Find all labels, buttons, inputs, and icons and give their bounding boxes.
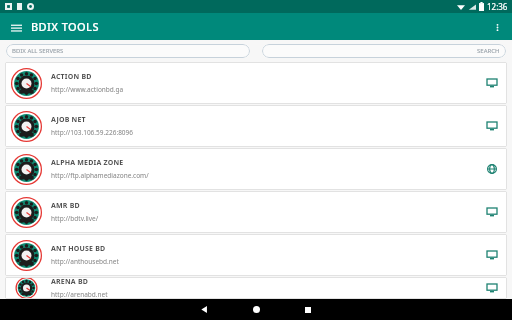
button[interactable]: ALPHA MEDIA ZONE (5, 148, 507, 190)
button[interactable]: Open navigation menu (5, 16, 27, 38)
button[interactable]: Open in browser (483, 246, 501, 264)
button[interactable]: ANT HOUSE BD (5, 234, 507, 276)
staticText: ANT HOUSE BD (51, 244, 106, 254)
button[interactable]: More options (486, 16, 508, 38)
staticText: 12:36 (487, 1, 508, 12)
staticText: BDIX ALL SERVERS (12, 47, 64, 55)
staticText: http://www.actionbd.ga (51, 85, 124, 94)
button[interactable]: SEARCH (262, 44, 506, 58)
staticText: http://anthousebd.net (51, 257, 119, 266)
staticText: SEARCH (477, 47, 500, 55)
staticText: BDIX TOOLS (31, 19, 99, 34)
staticText: http://ftp.alphamediazone.com/ (51, 171, 149, 180)
button[interactable]: AJOB NET (5, 105, 507, 147)
button[interactable]: BDIX ALL SERVERS (6, 44, 250, 58)
button[interactable]: ACTION BD (5, 62, 507, 104)
button[interactable]: Back (191, 299, 217, 320)
button[interactable]: Open in browser (483, 117, 501, 135)
staticText: AJOB NET (51, 115, 86, 125)
button[interactable]: Open in browser (483, 279, 501, 297)
staticText: ALPHA MEDIA ZONE (51, 158, 124, 168)
staticText: ACTION BD (51, 72, 92, 82)
staticText: AMR BD (51, 201, 80, 211)
button[interactable]: Recent apps (295, 299, 321, 320)
button[interactable]: ARENA BD (5, 277, 507, 299)
staticText: http://103.106.59.226:8096 (51, 128, 134, 137)
button[interactable]: Open website (483, 160, 501, 178)
staticText: ARENA BD (51, 277, 89, 287)
button[interactable]: Open in browser (483, 203, 501, 221)
button[interactable]: Open in browser (483, 74, 501, 92)
button[interactable]: AMR BD (5, 191, 507, 233)
staticText: http://bdtv.live/ (51, 214, 99, 223)
button[interactable]: Home (243, 299, 269, 320)
staticText: http://arenabd.net (51, 290, 108, 299)
